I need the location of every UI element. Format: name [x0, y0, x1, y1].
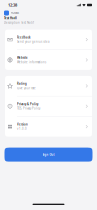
staticText: Website informations: [17, 60, 46, 64]
staticText: Test Hodl: [4, 16, 17, 20]
staticText: Sign Out: [42, 153, 54, 156]
staticText: Version: [17, 123, 28, 126]
staticText: Rating: [17, 82, 27, 85]
staticText: Website: [17, 56, 28, 59]
staticText: Send your genius idea: [17, 40, 49, 43]
staticText: Give your rate: [17, 86, 36, 90]
button[interactable]: Website: [5, 50, 92, 70]
staticText: Description Test Notif: [4, 21, 34, 24]
button[interactable]: Version: [5, 117, 92, 137]
staticText: v 1.0.0: [17, 127, 27, 130]
staticText: HOMES: [11, 11, 19, 15]
button[interactable]: Rating: [5, 76, 92, 96]
staticText: 12:38: [8, 2, 17, 8]
button[interactable]: Feedback: [5, 30, 92, 50]
staticText: Privacy & Policy: [17, 102, 38, 106]
button[interactable]: Privacy & Policy: [5, 96, 92, 116]
staticText: Feedback: [17, 36, 31, 39]
staticText: TOS, Privacy Policy: [17, 107, 40, 110]
button[interactable]: Sign Out: [4, 148, 92, 162]
